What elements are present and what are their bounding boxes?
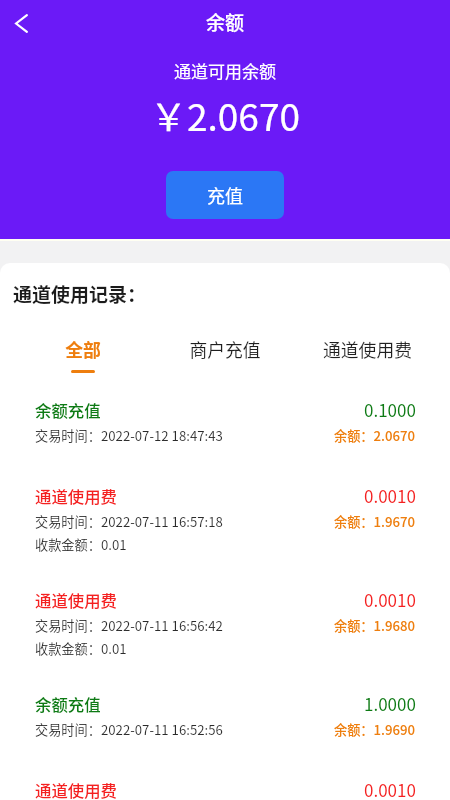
staticText: 余额 xyxy=(206,8,245,36)
staticText: 通道使用费 xyxy=(323,336,412,362)
staticText: 充值 xyxy=(207,182,243,208)
staticText: 余额充值 xyxy=(35,398,101,422)
button[interactable]: 通道使用费 xyxy=(0,484,450,588)
staticText: 余额：2.0670 xyxy=(334,426,416,445)
staticText: 交易时间：2022-07-11 16:57:18 xyxy=(35,512,223,531)
button[interactable]: 商户充值 xyxy=(154,336,296,380)
staticText: 0.1000 xyxy=(364,397,416,422)
staticText: 全部 xyxy=(65,336,101,362)
button[interactable]: Back xyxy=(3,5,39,41)
button[interactable]: 充值 xyxy=(166,171,284,219)
staticText: ￥2.0670 xyxy=(150,88,300,142)
staticText: 0.0010 xyxy=(364,587,416,612)
button[interactable]: 余额充值 xyxy=(0,692,450,778)
staticText: 交易时间：2022-07-11 16:52:56 xyxy=(35,720,223,739)
staticText: 收款金额：0.01 xyxy=(35,535,127,554)
staticText: 收款金额：0.01 xyxy=(35,639,127,658)
staticText: 商户充值 xyxy=(189,336,261,362)
button[interactable]: 通道使用费 xyxy=(296,336,438,380)
button[interactable]: 通道使用费 xyxy=(0,588,450,692)
button[interactable]: 通道使用费 xyxy=(0,778,450,800)
staticText: 余额：1.9690 xyxy=(334,720,416,739)
staticText: 余额：1.9680 xyxy=(334,616,416,635)
staticText: 0.0010 xyxy=(364,777,416,800)
staticText: 通道可用余额 xyxy=(174,58,276,83)
staticText: 余额：1.9670 xyxy=(334,512,416,531)
button[interactable]: 全部 xyxy=(12,336,154,380)
staticText: 通道使用费 xyxy=(35,588,117,612)
staticText: 通道使用费 xyxy=(35,484,117,508)
staticText: 1.0000 xyxy=(364,691,416,716)
button[interactable]: 余额充值 xyxy=(0,398,450,484)
staticText: 通道使用费 xyxy=(35,778,117,800)
staticText: 余额充值 xyxy=(35,692,101,716)
staticText: 交易时间：2022-07-12 18:47:43 xyxy=(35,426,223,445)
staticText: 0.0010 xyxy=(364,483,416,508)
staticText: 交易时间：2022-07-11 16:56:42 xyxy=(35,616,223,635)
staticText: 通道使用记录： xyxy=(13,280,147,308)
